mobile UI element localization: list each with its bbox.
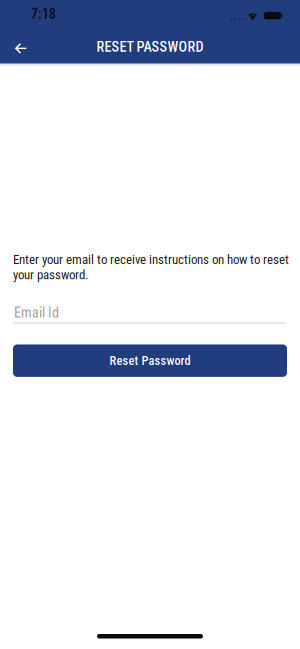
button[interactable]: Back — [0, 32, 27, 64]
staticText: Reset Password — [109, 353, 190, 368]
staticText: Email Id — [14, 304, 59, 321]
staticText: Enter your email to receive instructions… — [13, 252, 289, 282]
staticText: RESET PASSWORD — [96, 38, 203, 55]
staticText: 7:18 — [31, 6, 56, 22]
textField[interactable]: Email Id — [14, 304, 300, 321]
button[interactable]: Reset Password — [13, 344, 287, 377]
